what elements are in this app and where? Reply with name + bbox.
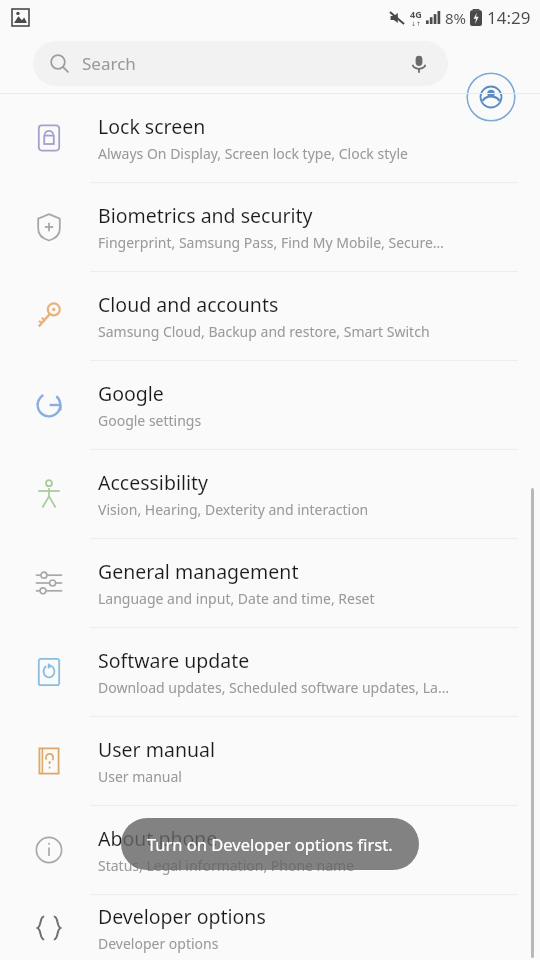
button[interactable]: Developer options	[0, 895, 540, 960]
staticText: Search	[82, 52, 136, 75]
staticText: Lock screen	[98, 113, 206, 140]
button[interactable]: User manual	[0, 717, 540, 805]
staticText: Status, Legal information, Phone name	[98, 856, 355, 875]
button[interactable]: Account	[466, 72, 516, 122]
staticText: Download updates, Scheduled software upd…	[98, 678, 449, 697]
staticText: Samsung Cloud, Backup and restore, Smart…	[98, 322, 430, 341]
staticText: Developer options	[98, 934, 219, 953]
button[interactable]: Search	[33, 41, 448, 86]
button[interactable]: Google	[0, 361, 540, 449]
staticText: Fingerprint, Samsung Pass, Find My Mobil…	[98, 233, 444, 252]
staticText: User manual	[98, 767, 182, 786]
button[interactable]: About phone	[0, 806, 540, 894]
button[interactable]: Biometrics and security	[0, 183, 540, 271]
staticText: User manual	[98, 736, 215, 763]
staticText: Accessibility	[98, 469, 208, 496]
button[interactable]: Voice search	[407, 52, 431, 76]
staticText: Always On Display, Screen lock type, Clo…	[98, 144, 408, 163]
staticText: Google	[98, 380, 164, 407]
staticText: 14:29	[487, 6, 531, 29]
staticText: Google settings	[98, 411, 202, 430]
staticText: General management	[98, 558, 299, 585]
staticText: Biometrics and security	[98, 202, 313, 229]
staticText: 8%	[445, 8, 467, 28]
staticText: Cloud and accounts	[98, 291, 279, 318]
button[interactable]: Accessibility	[0, 450, 540, 538]
staticText: Language and input, Date and time, Reset	[98, 589, 375, 608]
staticText: Developer options	[98, 903, 266, 930]
staticText: 4G	[410, 8, 422, 20]
button[interactable]: Cloud and accounts	[0, 272, 540, 360]
staticText: Software update	[98, 647, 250, 674]
button[interactable]: General management	[0, 539, 540, 627]
staticText: Turn on Developer options first.	[147, 833, 393, 855]
staticText: About phone	[98, 825, 218, 852]
button[interactable]: Lock screen	[0, 94, 540, 182]
button[interactable]: Software update	[0, 628, 540, 716]
staticText: Vision, Hearing, Dexterity and interacti…	[98, 500, 369, 519]
staticText: ↓↑	[411, 20, 422, 27]
